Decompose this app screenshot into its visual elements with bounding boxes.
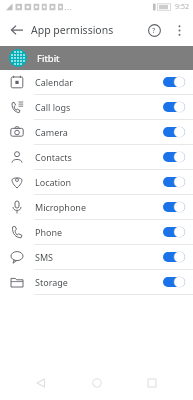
staticText: Contacts: [35, 151, 163, 163]
button[interactable]: Back: [26, 368, 56, 398]
staticText: 9:52: [175, 2, 189, 12]
button[interactable]: Call logs: [0, 95, 193, 119]
button[interactable]: Storage: [0, 270, 193, 294]
button[interactable]: Contacts: [0, 145, 193, 169]
staticText: SMS: [35, 251, 163, 263]
button[interactable]: SMS: [0, 245, 193, 269]
staticText: Phone: [35, 226, 163, 238]
staticText: Fitbit: [37, 52, 60, 65]
button[interactable]: Toggle permission: [163, 176, 185, 188]
staticText: Storage: [35, 276, 163, 288]
button[interactable]: Toggle permission: [163, 126, 185, 138]
button[interactable]: Recents: [137, 368, 167, 398]
button[interactable]: Toggle permission: [163, 101, 185, 113]
button[interactable]: Calendar: [0, 70, 193, 94]
staticText: Calendar: [35, 76, 163, 88]
button[interactable]: Back: [4, 17, 30, 43]
staticText: Microphone: [35, 201, 163, 213]
staticText: Location: [35, 176, 163, 188]
button[interactable]: Toggle permission: [163, 201, 185, 213]
button[interactable]: More options: [167, 18, 191, 42]
button[interactable]: Camera: [0, 120, 193, 144]
button[interactable]: Toggle permission: [163, 226, 185, 238]
button[interactable]: Phone: [0, 220, 193, 244]
button[interactable]: Toggle permission: [163, 76, 185, 88]
button[interactable]: Toggle permission: [163, 276, 185, 288]
button[interactable]: Microphone: [0, 195, 193, 219]
staticText: ?: [152, 25, 156, 35]
button[interactable]: Help: [141, 17, 167, 43]
button[interactable]: Toggle permission: [163, 251, 185, 263]
button[interactable]: Toggle permission: [163, 151, 185, 163]
button[interactable]: Home: [82, 368, 112, 398]
staticText: Call logs: [35, 101, 163, 113]
staticText: Camera: [35, 126, 163, 138]
staticText: App permissions: [31, 23, 114, 37]
button[interactable]: Location: [0, 170, 193, 194]
